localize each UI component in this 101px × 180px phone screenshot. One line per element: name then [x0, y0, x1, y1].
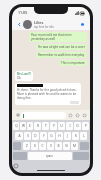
button[interactable]: N: [63, 142, 70, 150]
staticText: G: [50, 134, 53, 138]
button[interactable]: space: [28, 152, 72, 160]
button[interactable]: E: [27, 122, 33, 130]
staticText: 11:05: [18, 10, 28, 15]
button[interactable]: Q: [13, 122, 19, 130]
button[interactable]: V: [47, 142, 54, 150]
staticText: D: [34, 134, 37, 138]
staticText: F: [43, 134, 45, 138]
staticText: Remember to walk him everyday: [38, 53, 85, 57]
button[interactable]: R: [34, 122, 41, 130]
button[interactable]: Video call: [79, 20, 87, 28]
staticText: R: [37, 124, 39, 128]
staticText: S: [27, 134, 29, 138]
button[interactable]: D: [32, 132, 39, 140]
button[interactable]: U: [58, 122, 65, 130]
button[interactable]: Contact avatar: [23, 20, 32, 29]
button[interactable]: Hi there. Thanks for the good job with c…: [15, 83, 81, 105]
staticText: A: [18, 134, 21, 138]
staticText: Your mum told me that mine yesterday as …: [31, 33, 85, 41]
button[interactable]: This is important: [59, 60, 87, 66]
staticText: E: [29, 124, 31, 128]
staticText: K: [75, 134, 77, 138]
staticText: He was alright and can be a carer: [38, 45, 85, 49]
staticText: Y: [53, 124, 55, 128]
staticText: P: [85, 124, 87, 128]
staticText: space: [46, 154, 54, 158]
button[interactable]: Voice message: [82, 113, 87, 118]
button[interactable]: S: [24, 132, 31, 140]
staticText: Ok: [17, 76, 21, 80]
staticText: L: [83, 134, 85, 138]
staticText: Q: [15, 124, 18, 128]
staticText: U: [60, 124, 63, 128]
staticText: Z: [26, 144, 28, 148]
staticText: N: [65, 144, 68, 148]
staticText: I: [69, 124, 71, 128]
staticText: M: [73, 144, 76, 148]
button[interactable]: A: [15, 132, 23, 140]
staticText: H: [58, 134, 61, 138]
button[interactable]: F: [40, 132, 47, 140]
button[interactable]: G: [48, 132, 55, 140]
button[interactable]: X: [31, 142, 38, 150]
staticText: C: [41, 144, 44, 148]
button[interactable]: T: [42, 122, 49, 130]
button[interactable]: P: [82, 122, 89, 130]
button[interactable]: O: [74, 122, 81, 130]
staticText: Hi there. Thanks for the good job with c…: [17, 88, 79, 100]
staticText: W: [22, 124, 25, 128]
button[interactable]: J: [64, 132, 71, 140]
button[interactable]: W: [20, 122, 26, 130]
button[interactable]: [21, 112, 66, 119]
staticText: X: [34, 144, 36, 148]
button[interactable]: Remember to walk him everyday: [36, 52, 87, 58]
staticText: T: [45, 124, 47, 128]
button[interactable]: Emoji keyboard: [13, 163, 18, 168]
button[interactable]: C: [39, 142, 46, 150]
button[interactable]: Camera: [75, 113, 80, 118]
button[interactable]: He was alright and can be a carer: [36, 44, 87, 50]
button[interactable]: Mrs Lum(?): [15, 71, 33, 81]
button[interactable]: H: [56, 132, 63, 140]
button[interactable]: Your mum told me that mine yesterday as …: [29, 32, 87, 42]
staticText: Lilies: [34, 20, 44, 25]
button[interactable]: I: [66, 122, 73, 130]
staticText: This is important: [61, 61, 85, 65]
button[interactable]: Emoji: [68, 113, 73, 118]
button[interactable]: Z: [23, 142, 30, 150]
staticText: J: [67, 134, 68, 138]
button[interactable]: L: [80, 132, 87, 140]
staticText: B: [57, 144, 60, 148]
staticText: Mrs Lum(?): [17, 72, 31, 76]
button[interactable]: M: [71, 142, 78, 150]
button[interactable]: Back: [15, 20, 23, 28]
button[interactable]: B: [55, 142, 62, 150]
staticText: O: [76, 124, 79, 128]
staticText: tap here for info: [34, 25, 54, 29]
button[interactable]: K: [72, 132, 79, 140]
button[interactable]: Attach: [15, 112, 21, 118]
button[interactable]: Y: [50, 122, 57, 130]
staticText: V: [50, 144, 52, 148]
